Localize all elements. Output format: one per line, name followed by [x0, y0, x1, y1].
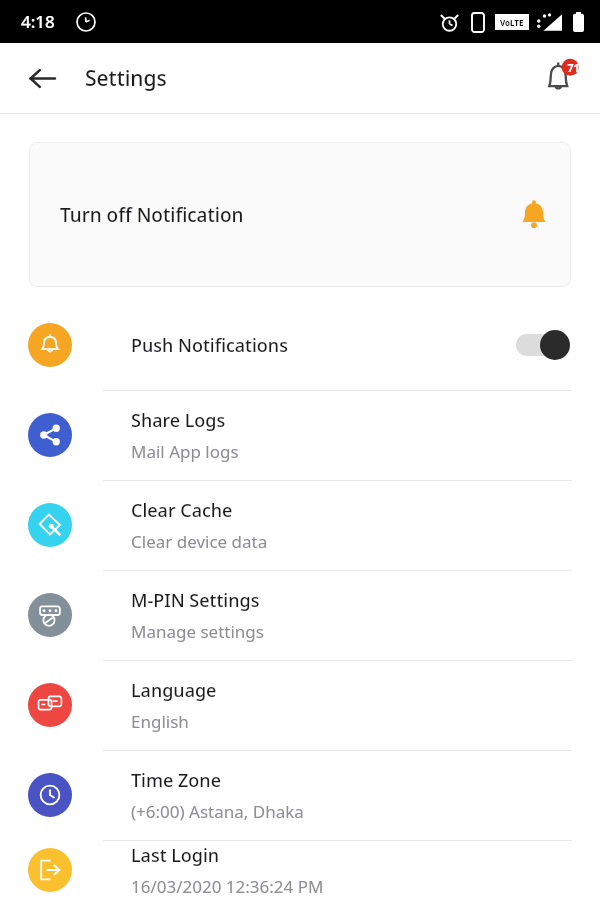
staticText: Clear Cache: [131, 498, 233, 523]
staticText: 4:18: [21, 10, 55, 33]
staticText: Turn off Notification: [60, 202, 244, 228]
staticText: 16/03/2020 12:36:24 PM: [131, 875, 324, 898]
staticText: Last Login: [131, 843, 220, 868]
button[interactable]: Turn off Notification: [29, 142, 571, 287]
button[interactable]: Last Login: [0, 840, 600, 900]
staticText: 71: [567, 60, 580, 75]
staticText: Push Notifications: [131, 333, 288, 358]
button[interactable]: Notifications, 71 unread: [534, 51, 588, 105]
staticText: Mail App logs: [131, 440, 239, 463]
staticText: (+6:00) Astana, Dhaka: [131, 800, 304, 823]
staticText: Manage settings: [131, 620, 264, 643]
staticText: Settings: [85, 64, 167, 93]
button[interactable]: Back: [18, 54, 66, 102]
button[interactable]: Share Logs: [0, 390, 600, 480]
staticText: VoLTE: [500, 17, 524, 28]
button[interactable]: M-PIN Settings: [0, 570, 600, 660]
staticText: Share Logs: [131, 408, 226, 433]
staticText: Time Zone: [131, 768, 221, 793]
staticText: Clear device data: [131, 530, 268, 553]
button[interactable]: Language: [0, 660, 600, 750]
button[interactable]: Clear Cache: [0, 480, 600, 570]
button[interactable]: Push Notifications: [0, 300, 600, 390]
button[interactable]: Time Zone: [0, 750, 600, 840]
button[interactable]: Push notifications toggle: [514, 327, 572, 363]
staticText: M-PIN Settings: [131, 588, 260, 613]
staticText: Language: [131, 678, 217, 703]
staticText: English: [131, 710, 189, 733]
